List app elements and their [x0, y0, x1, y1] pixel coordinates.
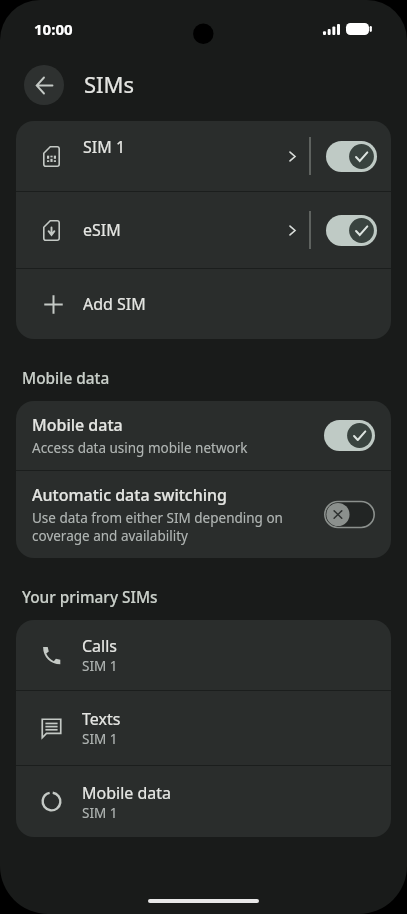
staticText: Mobile data [32, 414, 123, 436]
button[interactable]: eSIM [16, 192, 309, 268]
button[interactable]: Toggle eSIM [311, 192, 391, 268]
staticText: Access data using mobile network [32, 439, 248, 457]
staticText: SIM 1 [82, 804, 118, 822]
staticText: SIMs [84, 69, 135, 99]
staticText: Add SIM [83, 293, 146, 315]
staticText: SIM 1 [83, 136, 126, 158]
button[interactable]: SIM 1 [16, 121, 309, 191]
staticText: Automatic data switching [32, 484, 227, 506]
staticText: Your primary SIMs [22, 587, 158, 608]
staticText: SIM 1 [82, 657, 118, 675]
button[interactable]: Mobile data [16, 766, 391, 837]
button[interactable]: Automatic data switching [16, 471, 391, 558]
staticText: SIM 1 [82, 730, 118, 748]
button[interactable]: Texts [16, 691, 391, 765]
button[interactable]: Toggle SIM 1 [311, 121, 391, 191]
button[interactable]: Mobile data [16, 401, 391, 470]
button[interactable]: Back [24, 65, 64, 105]
staticText: Mobile data [22, 368, 110, 389]
button[interactable]: Add SIM [16, 269, 391, 339]
staticText: Calls [82, 635, 118, 657]
staticText: 10:00 [34, 19, 73, 39]
button[interactable]: Calls [16, 620, 391, 690]
staticText: Texts [82, 708, 121, 730]
staticText: Mobile data [82, 782, 172, 804]
staticText: eSIM [83, 219, 121, 241]
staticText: Use data from either SIM depending on co… [32, 509, 312, 545]
